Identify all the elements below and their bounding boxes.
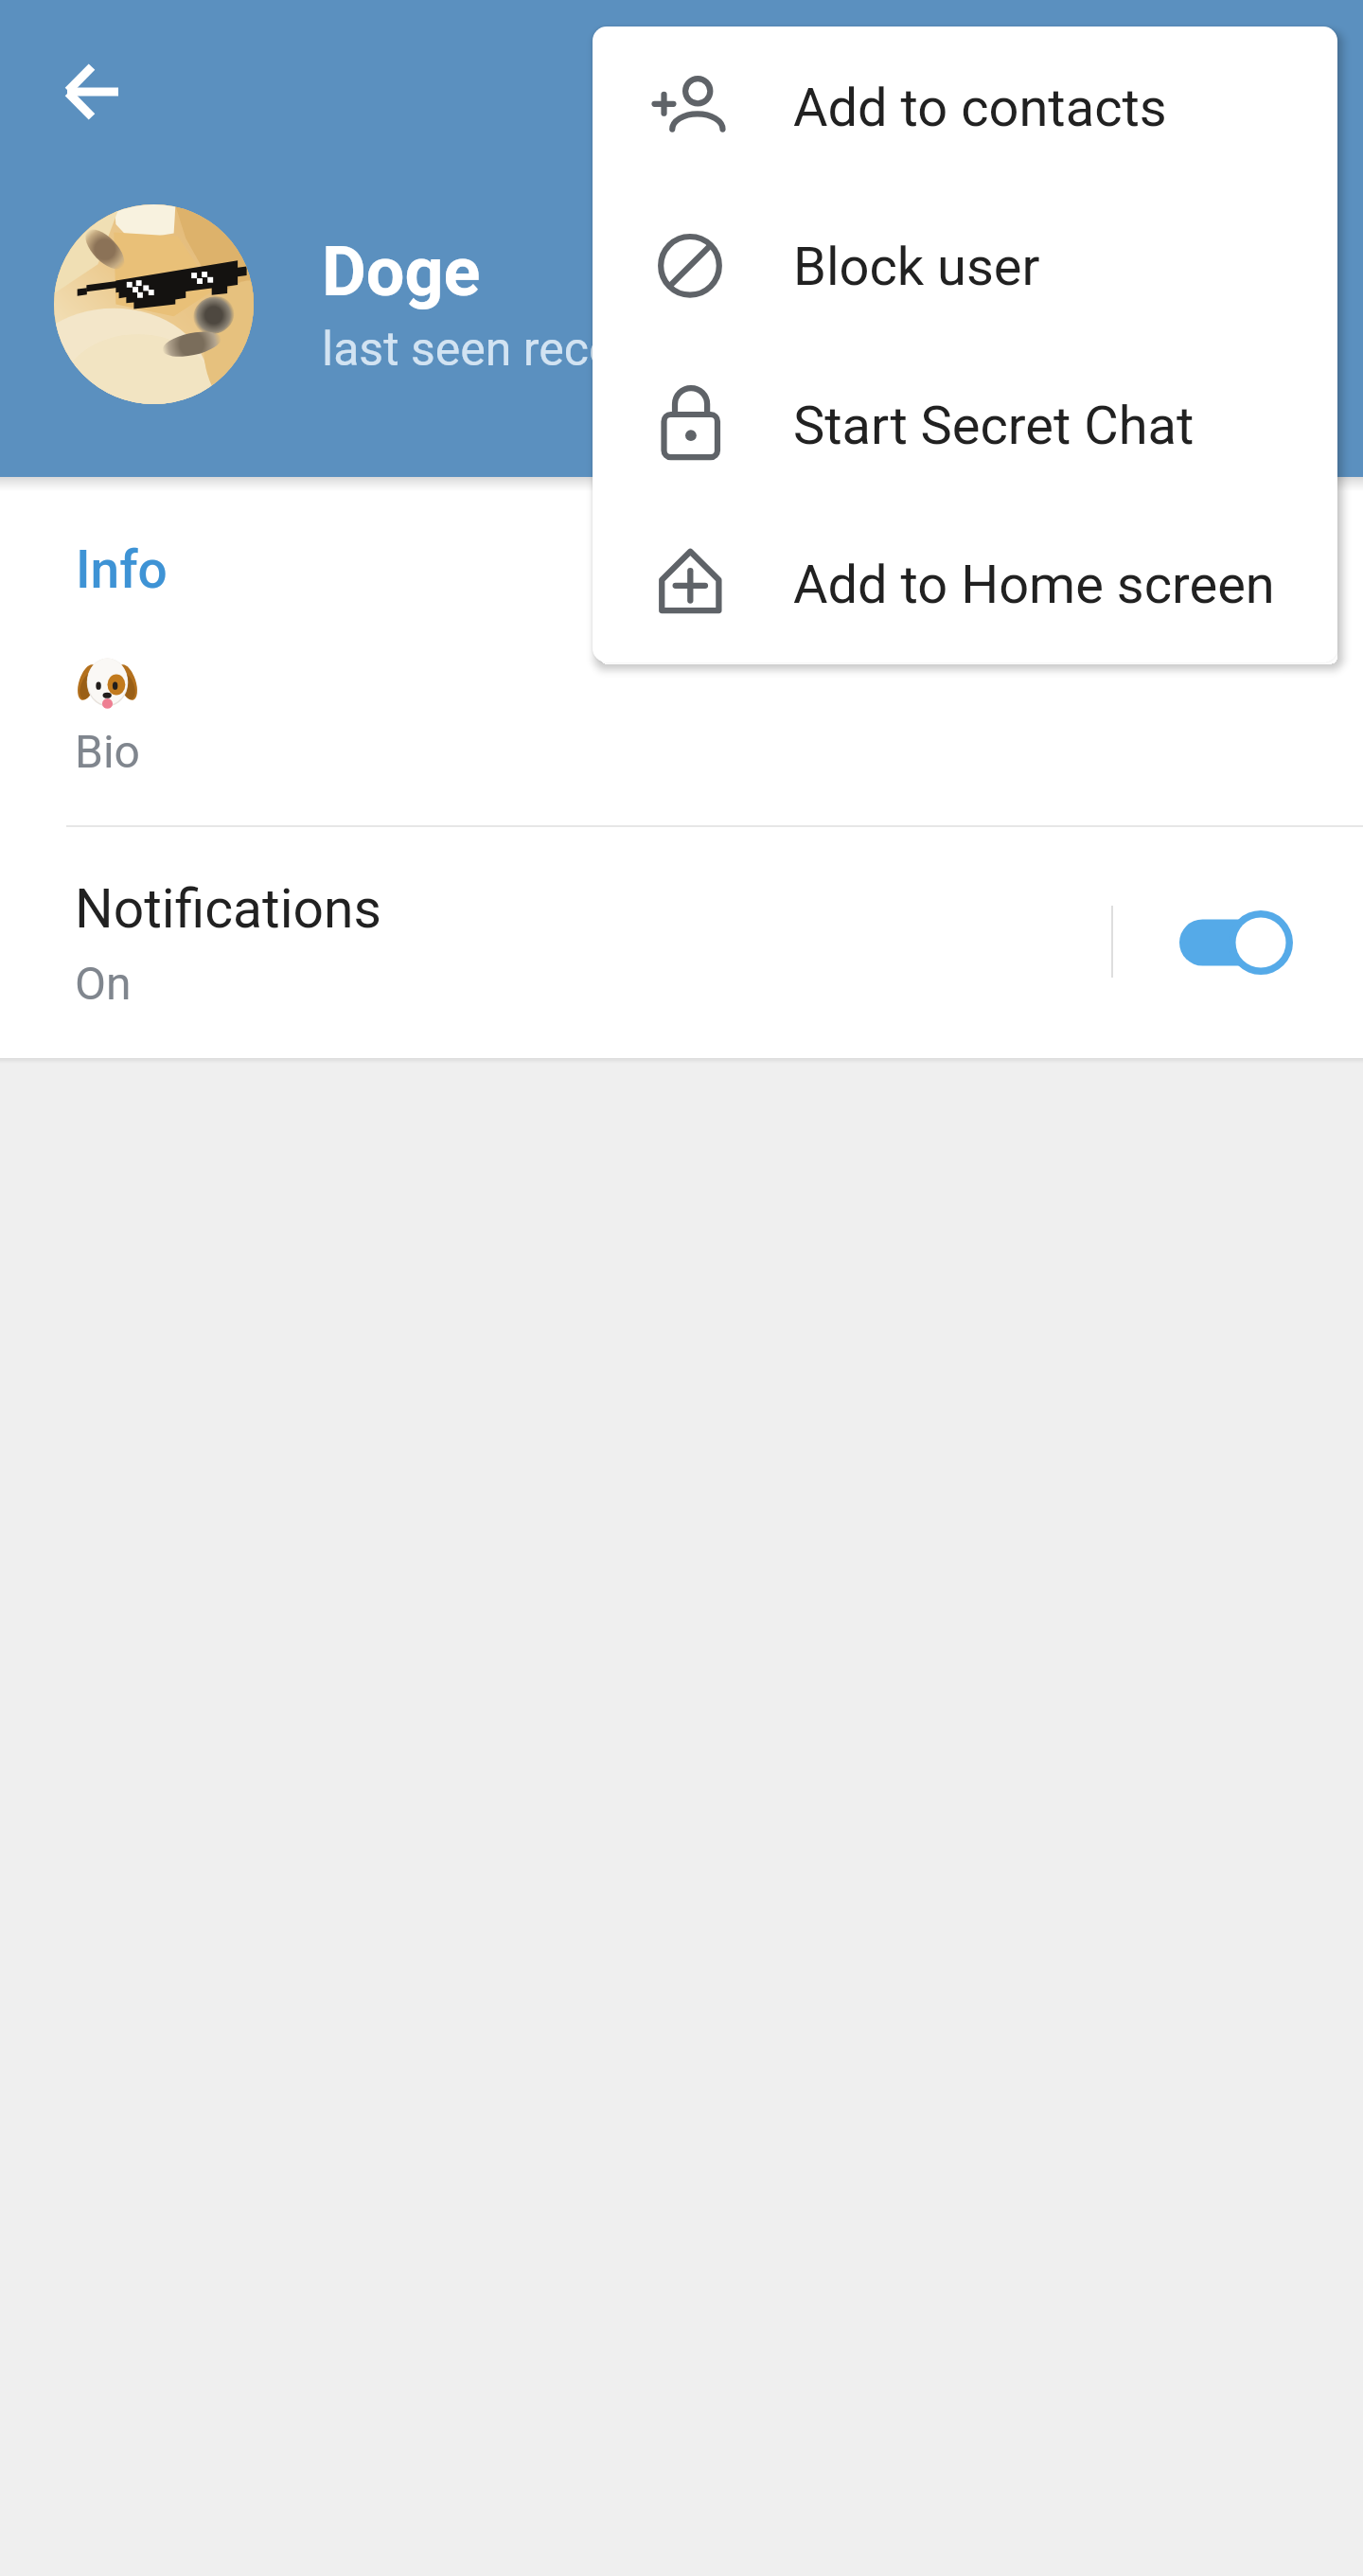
button[interactable]: Bio: [0, 628, 1363, 825]
staticText: last seen recently: [322, 322, 690, 378]
staticText: Block user: [793, 236, 1040, 298]
button[interactable]: Profile photo: [54, 204, 254, 404]
button[interactable]: Start Secret Chat: [593, 344, 1337, 503]
button[interactable]: Notifications: [0, 827, 1363, 1057]
staticText: Bio: [75, 725, 140, 778]
button[interactable]: Add to Home screen: [593, 503, 1337, 662]
staticText: Info: [76, 539, 168, 600]
staticText: On: [75, 957, 132, 1010]
staticText: Doge: [322, 232, 481, 311]
button[interactable]: Notifications switch, on: [1170, 891, 1308, 995]
staticText: Notifications: [75, 877, 382, 941]
staticText: Add to Home screen: [793, 554, 1275, 616]
button[interactable]: Add to contacts: [593, 26, 1337, 185]
button[interactable]: Block user: [593, 185, 1337, 344]
staticText: Add to contacts: [793, 77, 1167, 139]
button[interactable]: Back: [35, 35, 149, 149]
staticText: Start Secret Chat: [793, 395, 1195, 457]
